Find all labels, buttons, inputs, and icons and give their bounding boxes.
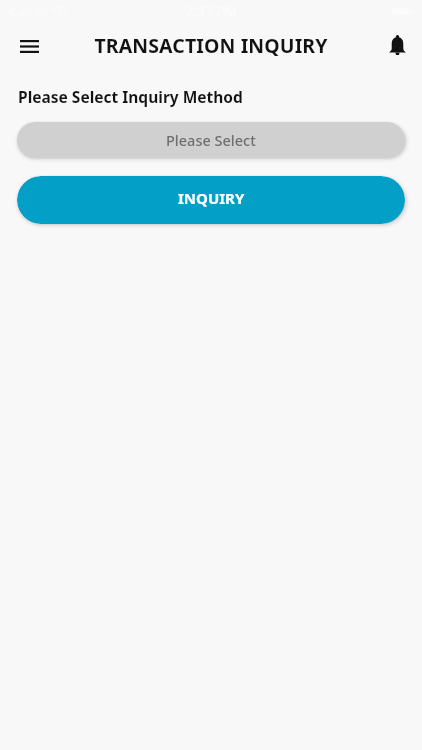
button[interactable]: Please Select [17, 122, 405, 158]
button[interactable]: Notifications [380, 28, 414, 62]
button[interactable]: Menu [11, 27, 47, 63]
staticText: TRANSACTION INQUIRY [94, 32, 328, 59]
staticText: INQUIRY [178, 188, 245, 208]
staticText: Please Select [166, 130, 256, 150]
button[interactable]: INQUIRY [17, 176, 405, 224]
staticText: Please Select Inquiry Method [18, 86, 243, 107]
